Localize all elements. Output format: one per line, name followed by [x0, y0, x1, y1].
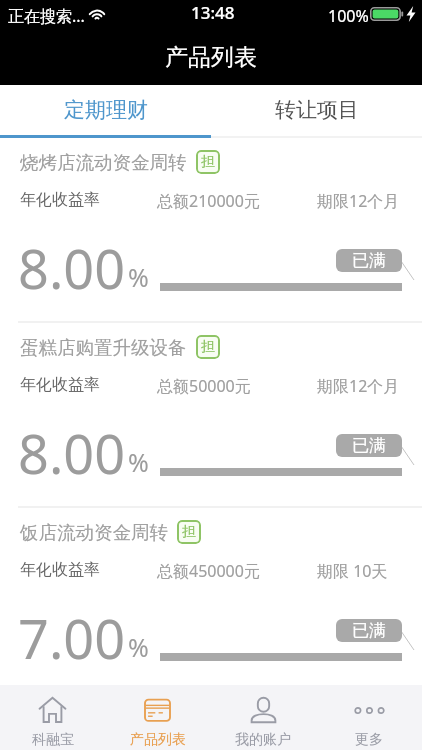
button[interactable]: 定期理财 [0, 85, 211, 135]
staticText: 年化收益率 [20, 560, 100, 580]
staticText: 总额50000元 [157, 375, 251, 397]
staticText: 期限12个月 [317, 375, 400, 397]
button[interactable]: 烧烤店流动资金周转 [0, 138, 422, 323]
staticText: 已满 [352, 435, 386, 456]
staticText: 产品列表 [130, 731, 186, 749]
button[interactable]: 蛋糕店购置升级设备 [0, 323, 422, 508]
staticText: 100% [328, 5, 369, 27]
staticText: 担 [201, 153, 215, 171]
staticText: 总额210000元 [157, 190, 260, 212]
staticText: 已满 [352, 250, 386, 271]
staticText: 担 [182, 523, 196, 541]
button[interactable]: 转让项目 [211, 85, 422, 135]
staticText: 定期理财 [64, 97, 148, 123]
staticText: 年化收益率 [20, 190, 100, 210]
staticText: 已满 [352, 620, 386, 641]
staticText: 产品列表 [165, 43, 257, 72]
staticText: 总额450000元 [157, 560, 260, 582]
staticText: 转让项目 [275, 97, 359, 123]
button[interactable]: 饭店流动资金周转 [0, 508, 422, 693]
staticText: 我的账户 [235, 731, 291, 749]
staticText: 年化收益率 [20, 375, 100, 395]
staticText: 8.00 [18, 416, 126, 490]
staticText: 担 [201, 338, 215, 356]
staticText: 8.00 [18, 231, 126, 305]
button[interactable]: 更多 [316, 685, 422, 750]
staticText: 更多 [355, 731, 383, 749]
staticText: % [128, 445, 149, 479]
staticText: 蛋糕店购置升级设备 [20, 336, 187, 359]
staticText: % [128, 630, 149, 664]
button[interactable]: 我的账户 [210, 685, 316, 750]
staticText: 科融宝 [32, 731, 74, 749]
button[interactable]: 科融宝 [0, 685, 105, 750]
staticText: 期限 10天 [317, 560, 388, 582]
button[interactable]: 产品列表 [105, 685, 210, 750]
staticText: 期限12个月 [317, 190, 400, 212]
staticText: 7.00 [18, 601, 126, 675]
staticText: 饭店流动资金周转 [20, 521, 168, 544]
staticText: 烧烤店流动资金周转 [20, 151, 187, 174]
staticText: % [128, 260, 149, 294]
staticText: 13:48 [191, 1, 235, 24]
staticText: 正在搜索... [8, 5, 85, 27]
